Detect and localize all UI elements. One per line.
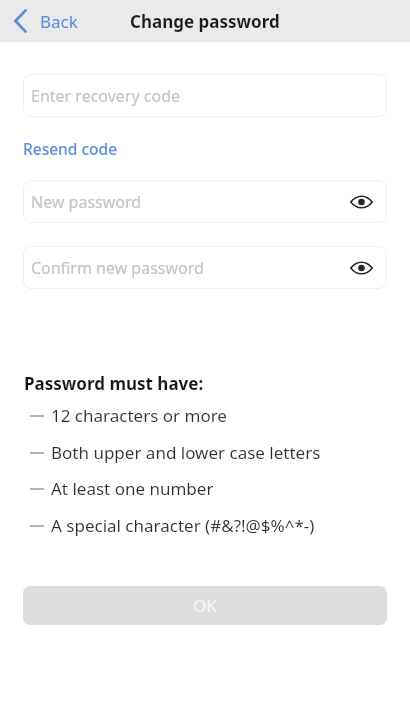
button[interactable]: Show password xyxy=(348,189,374,215)
staticText: Password must have: xyxy=(24,372,204,395)
staticText: New password xyxy=(31,191,142,213)
button[interactable]: Confirm new password xyxy=(23,246,387,289)
button[interactable]: Back xyxy=(0,0,88,42)
staticText: OK xyxy=(193,594,217,617)
staticText: Enter recovery code xyxy=(31,85,181,107)
button[interactable]: New password xyxy=(23,180,387,223)
button[interactable]: Enter recovery code xyxy=(23,74,387,117)
staticText: 12 characters or more xyxy=(51,404,227,427)
button[interactable]: Show password xyxy=(348,255,374,281)
button[interactable]: Resend code xyxy=(23,138,118,159)
staticText: Back xyxy=(40,10,78,33)
staticText: Confirm new password xyxy=(31,257,204,279)
staticText: Both upper and lower case letters xyxy=(51,441,321,464)
staticText: A special character (#&?!@$%^*-) xyxy=(51,514,315,537)
staticText: At least one number xyxy=(51,477,214,500)
staticText: Change password xyxy=(130,10,280,33)
staticText: Resend code xyxy=(23,138,118,159)
